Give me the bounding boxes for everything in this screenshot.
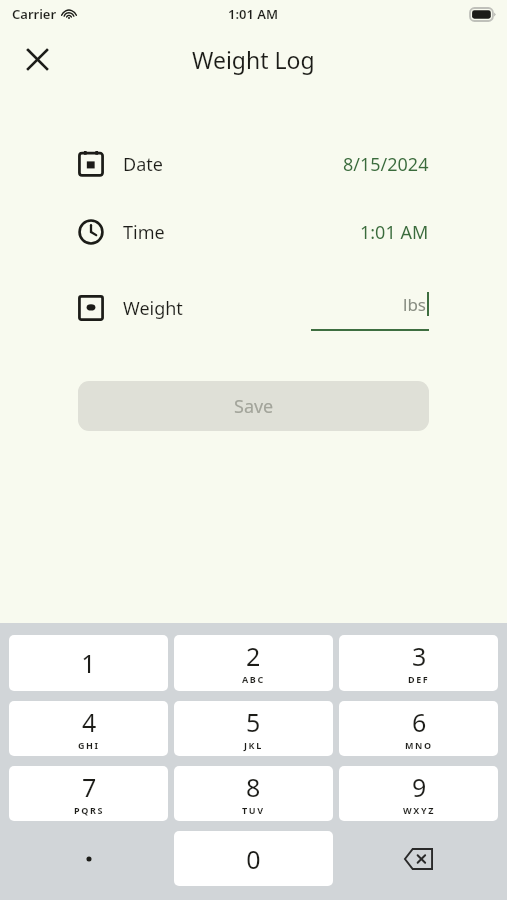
staticText: DEF [408, 673, 430, 685]
button[interactable]: Date [78, 147, 429, 181]
staticText: lbs [403, 293, 426, 316]
staticText: MNO [405, 739, 433, 751]
button[interactable]: lbs [311, 285, 429, 331]
staticText: 0 [246, 842, 261, 876]
staticText: 7 [82, 770, 97, 804]
button[interactable]: 2 [174, 635, 333, 691]
staticText: Weight Log [192, 44, 315, 75]
button[interactable]: Close [16, 38, 58, 80]
button[interactable]: 4 [9, 701, 168, 756]
staticText: 1:01 AM [360, 220, 429, 245]
button[interactable]: 3 [339, 635, 498, 691]
staticText: 1:01 AM [228, 5, 279, 23]
button[interactable]: Save [78, 381, 429, 431]
staticText: 2 [246, 639, 261, 673]
button[interactable]: 9 [339, 766, 498, 821]
staticText: 9 [412, 770, 427, 804]
button[interactable]: 1 [9, 635, 168, 691]
staticText: Weight [123, 296, 183, 321]
staticText: 6 [412, 705, 427, 739]
staticText: 8 [246, 770, 261, 804]
staticText: 4 [82, 705, 97, 739]
button[interactable]: Delete [339, 831, 498, 886]
staticText: PQRS [74, 804, 104, 816]
button[interactable]: 7 [9, 766, 168, 821]
button[interactable]: 6 [339, 701, 498, 756]
staticText: TUV [242, 804, 265, 816]
staticText: GHI [78, 739, 100, 751]
button[interactable]: 5 [174, 701, 333, 756]
staticText: 5 [246, 705, 261, 739]
button[interactable]: Decimal point [9, 831, 168, 886]
staticText: 3 [412, 639, 427, 673]
staticText: WXYZ [403, 804, 435, 816]
button[interactable]: 8 [174, 766, 333, 821]
staticText: 8/15/2024 [343, 152, 429, 177]
staticText: 1 [81, 646, 96, 680]
button[interactable]: 0 [174, 831, 333, 886]
staticText: Carrier [12, 5, 57, 23]
button[interactable]: Time [78, 215, 429, 249]
staticText: Time [123, 220, 165, 245]
staticText: Save [234, 394, 274, 419]
staticText: JKL [244, 739, 263, 751]
staticText: Date [123, 152, 163, 177]
staticText: ABC [242, 673, 265, 685]
